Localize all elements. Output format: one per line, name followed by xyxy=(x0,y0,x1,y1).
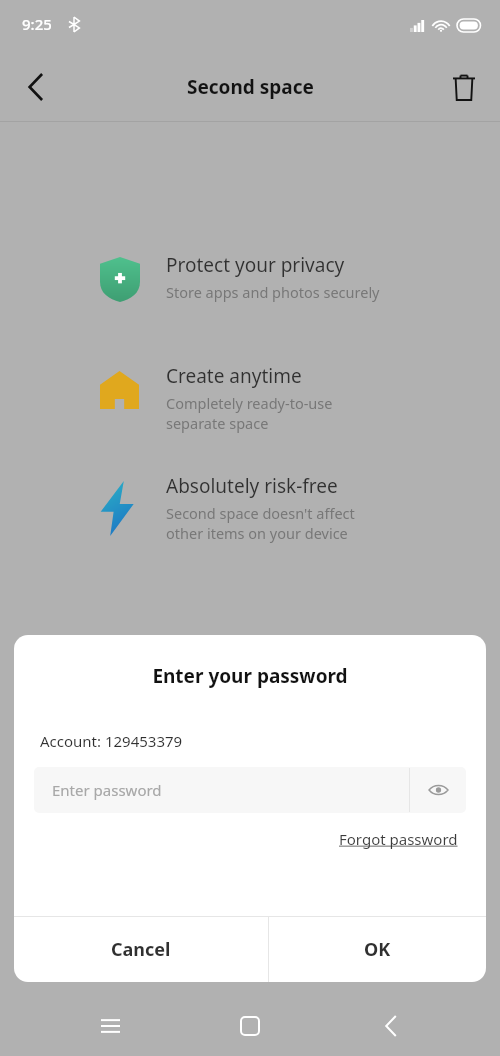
staticText: Cancel xyxy=(111,937,171,962)
staticText: Enter your password xyxy=(14,663,486,689)
staticText: Create anytime xyxy=(166,363,302,389)
staticText: Forgot password xyxy=(339,829,458,849)
staticText: Second space xyxy=(187,74,314,100)
staticText: Absolutely risk-free xyxy=(166,473,338,499)
staticText: Completely ready-to-use xyxy=(166,393,333,413)
button[interactable]: Back xyxy=(8,59,64,115)
button[interactable]: Cancel xyxy=(14,917,268,982)
staticText: Second space doesn't affect xyxy=(166,503,355,523)
staticText: separate space xyxy=(166,413,269,433)
button[interactable]: Forgot password xyxy=(335,825,462,853)
button[interactable]: Home xyxy=(219,996,281,1056)
staticText: Account: 129453379 xyxy=(40,731,183,751)
staticText: OK xyxy=(364,937,391,962)
button[interactable]: Back xyxy=(360,996,422,1056)
button[interactable]: Enter password xyxy=(34,767,409,813)
staticText: Enter password xyxy=(52,780,162,800)
staticText: other items on your device xyxy=(166,523,348,543)
button[interactable]: Recents xyxy=(79,996,141,1056)
staticText: Protect your privacy xyxy=(166,252,345,278)
staticText: 9:25 xyxy=(22,14,52,34)
button[interactable]: Show password xyxy=(410,767,466,813)
button[interactable]: Delete xyxy=(438,61,490,113)
staticText: Store apps and photos securely xyxy=(166,282,380,302)
button[interactable]: OK xyxy=(269,917,486,982)
